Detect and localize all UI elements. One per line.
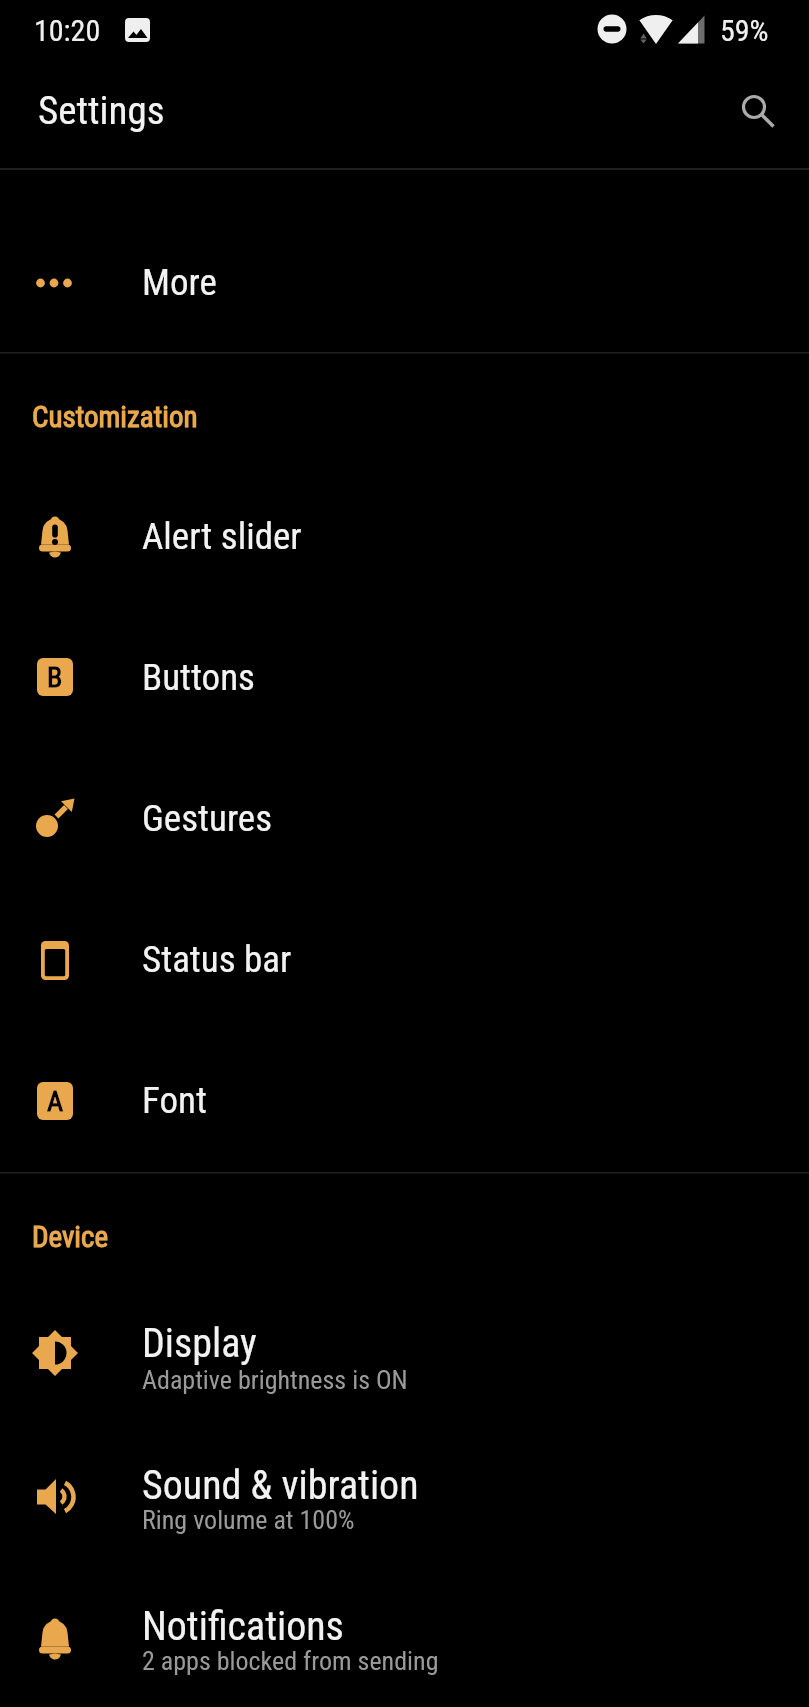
staticText: 59%: [720, 13, 769, 48]
button[interactable]: Alert slider: [0, 466, 809, 607]
staticText: Font: [142, 1079, 207, 1122]
staticText: 10:20: [34, 13, 101, 48]
staticText: Status bar: [142, 938, 292, 981]
button[interactable]: [0, 1285, 809, 1426]
staticText: A: [47, 1085, 64, 1118]
button[interactable]: Status bar: [0, 889, 809, 1030]
button[interactable]: More: [0, 212, 809, 352]
staticText: Notifications: [142, 1603, 344, 1650]
button[interactable]: [0, 1567, 809, 1707]
staticText: Buttons: [142, 656, 255, 699]
button[interactable]: Gestures: [0, 748, 809, 889]
staticText: B: [47, 661, 63, 694]
staticText: Adaptive brightness is ON: [142, 1365, 408, 1395]
button[interactable]: Buttons: [0, 607, 809, 748]
staticText: 2 apps blocked from sending: [142, 1646, 439, 1676]
button[interactable]: [730, 83, 778, 131]
button[interactable]: Font: [0, 1030, 809, 1171]
staticText: Display: [142, 1320, 257, 1367]
staticText: Alert slider: [142, 515, 302, 558]
staticText: Customization: [32, 400, 198, 434]
staticText: Device: [32, 1220, 109, 1254]
staticText: More: [142, 261, 217, 304]
staticText: Settings: [38, 88, 165, 134]
staticText: Sound & vibration: [142, 1462, 419, 1509]
staticText: Ring volume at 100%: [142, 1505, 355, 1535]
staticText: Gestures: [142, 797, 273, 840]
button[interactable]: [0, 1426, 809, 1567]
